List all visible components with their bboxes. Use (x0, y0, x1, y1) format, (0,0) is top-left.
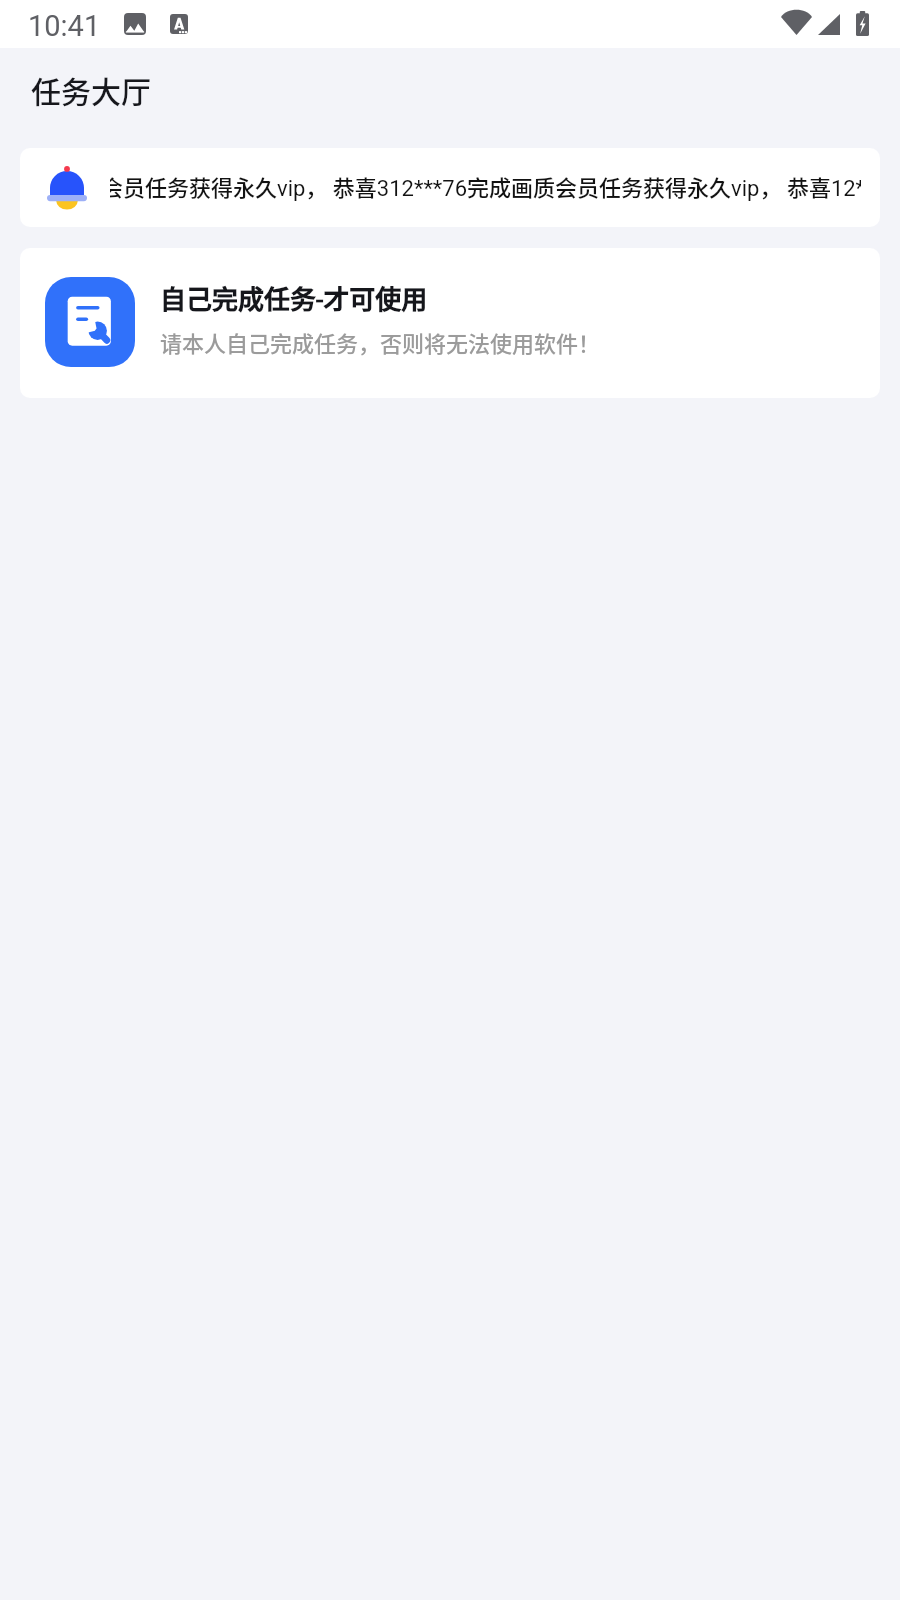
button[interactable]: 自己完成任务-才可使用 (20, 248, 880, 398)
other: Notifications (47, 166, 87, 209)
staticText: 自己完成任务-才可使用 (160, 279, 428, 317)
staticText: 任务大厅 (31, 68, 151, 111)
staticText: 请本人自己完成任务，否则将无法使用软件！ (160, 326, 601, 358)
staticText: 10:41 (28, 9, 101, 43)
button[interactable]: Notifications (20, 148, 880, 227)
staticText: 会员任务获得永久vip， 恭喜312***76完成画质会员任务获得永久vip， … (110, 170, 861, 202)
